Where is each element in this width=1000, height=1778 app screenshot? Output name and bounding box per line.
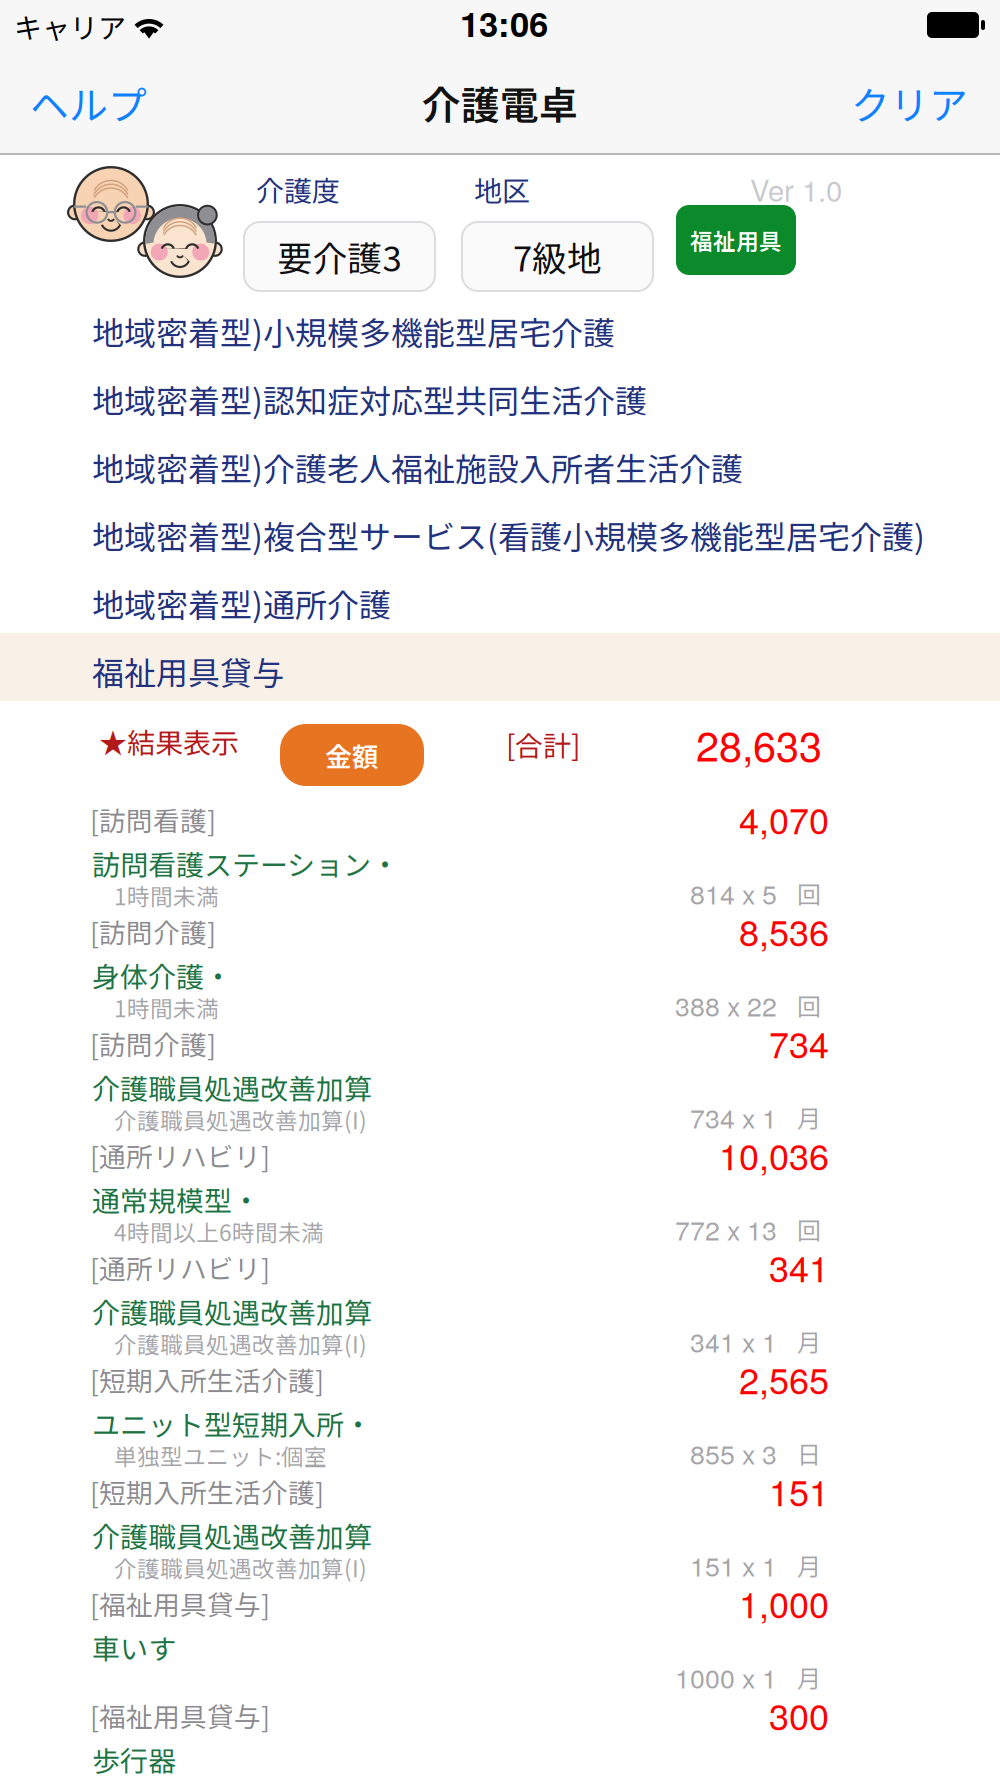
button[interactable]: 地域密着型)複合型サービス(看護小規模多機能型居宅介護) xyxy=(0,497,1000,565)
button[interactable]: クリア xyxy=(790,78,1000,128)
staticText: Ver 1.0 xyxy=(750,168,842,210)
staticText: 151 xyxy=(769,1465,829,1517)
button[interactable]: 地域密着型)小規模多機能型居宅介護 xyxy=(0,293,1000,361)
staticText: [訪問看護] xyxy=(90,800,216,839)
staticText: [短期入所生活介護] xyxy=(90,1472,324,1511)
staticText: 介護度 xyxy=(256,169,340,209)
staticText: [訪問介護] xyxy=(90,1024,216,1063)
staticText: 福祉用具 xyxy=(690,224,782,256)
staticText: 地域密着型)複合型サービス(看護小規模多機能型居宅介護) xyxy=(92,512,925,558)
staticText: [合計] xyxy=(506,724,580,764)
staticText: 介護電卓 xyxy=(422,75,578,131)
staticText: 814 x 5 xyxy=(690,874,777,912)
staticText: 月 xyxy=(797,1548,821,1582)
staticText: 金額 xyxy=(325,736,379,774)
staticText: 734 x 1 xyxy=(690,1098,777,1136)
button[interactable]: 要介護3 xyxy=(244,222,435,291)
staticText: [短期入所生活介護] xyxy=(90,1360,324,1399)
staticText: 1000 x 1 xyxy=(675,1658,777,1696)
staticText: 地域密着型)通所介護 xyxy=(92,580,391,626)
staticText: 月 xyxy=(797,1100,821,1134)
button[interactable]: 地域密着型)通所介護 xyxy=(0,565,1000,633)
staticText: ★結果表示 xyxy=(99,721,239,761)
staticText: 1時間未満 xyxy=(114,991,219,1024)
staticText: 300 xyxy=(769,1689,829,1741)
staticText: 341 xyxy=(769,1241,829,1293)
staticText: 1,000 xyxy=(739,1577,829,1629)
staticText: 2,565 xyxy=(739,1353,829,1405)
staticText: 歩行器 xyxy=(92,1739,176,1778)
staticText: ヘルプ xyxy=(30,75,147,131)
staticText: 1時間未満 xyxy=(114,879,219,912)
staticText: 訪問看護ステーション・ xyxy=(92,843,399,883)
staticText: 855 x 3 xyxy=(690,1434,777,1472)
staticText: 151 x 1 xyxy=(690,1546,777,1584)
staticText: [通所リハビリ] xyxy=(90,1248,270,1287)
button[interactable]: 介護電卓 xyxy=(350,74,650,132)
staticText: 7級地 xyxy=(513,231,602,282)
staticText: 13:06 xyxy=(460,0,548,48)
staticText: 341 x 1 xyxy=(690,1322,777,1360)
staticText: ユニット型短期入所・ xyxy=(92,1403,372,1443)
staticText: 月 xyxy=(797,1660,821,1694)
staticText: 地域密着型)認知症対応型共同生活介護 xyxy=(92,376,647,422)
staticText: [訪問介護] xyxy=(90,912,216,951)
staticText: 介護職員処遇改善加算(I) xyxy=(114,1327,367,1360)
staticText: 通常規模型・ xyxy=(92,1179,260,1219)
staticText: [福祉用具貸与] xyxy=(90,1584,270,1623)
staticText: 要介護3 xyxy=(277,231,401,282)
staticText: 回 xyxy=(797,876,821,910)
button[interactable]: 7級地 xyxy=(462,222,653,291)
staticText: 福祉用具貸与 xyxy=(92,648,284,694)
staticText: 介護職員処遇改善加算 xyxy=(92,1291,372,1331)
staticText: 28,633 xyxy=(696,714,822,773)
staticText: 10,036 xyxy=(719,1129,829,1181)
staticText: 地域密着型)小規模多機能型居宅介護 xyxy=(92,308,615,354)
staticText: 734 xyxy=(769,1017,829,1069)
staticText: 地域密着型)介護老人福祉施設入所者生活介護 xyxy=(92,444,743,490)
staticText: 回 xyxy=(797,1212,821,1246)
button[interactable]: 地域密着型)認知症対応型共同生活介護 xyxy=(0,361,1000,429)
staticText: 介護職員処遇改善加算 xyxy=(92,1067,372,1107)
button[interactable]: 福祉用具 xyxy=(676,205,796,275)
button[interactable]: 金額 xyxy=(280,724,424,786)
staticText: 388 x 22 xyxy=(675,986,777,1024)
staticText: 月 xyxy=(797,1324,821,1358)
staticText: 772 x 13 xyxy=(675,1210,777,1248)
staticText: 日 xyxy=(797,1436,821,1470)
staticText: 4,070 xyxy=(739,793,829,845)
staticText: [通所リハビリ] xyxy=(90,1136,270,1175)
staticText: 介護職員処遇改善加算(I) xyxy=(114,1551,367,1584)
button[interactable]: 地域密着型)介護老人福祉施設入所者生活介護 xyxy=(0,429,1000,497)
button[interactable]: 福祉用具貸与 xyxy=(0,633,1000,701)
staticText: 車いす xyxy=(92,1627,176,1667)
staticText: 介護職員処遇改善加算(I) xyxy=(114,1103,367,1136)
staticText: 介護職員処遇改善加算 xyxy=(92,1515,372,1555)
staticText: クリア xyxy=(851,75,968,131)
staticText: キャリア xyxy=(14,6,126,46)
button[interactable]: ヘルプ xyxy=(0,78,230,128)
staticText: 4時間以上6時間未満 xyxy=(114,1215,324,1248)
staticText: [福祉用具貸与] xyxy=(90,1696,270,1735)
staticText: 8,536 xyxy=(739,905,829,957)
staticText: 回 xyxy=(797,988,821,1022)
staticText: 身体介護・ xyxy=(92,955,232,995)
staticText: 単独型ユニット:個室 xyxy=(114,1439,327,1472)
staticText: 地区 xyxy=(474,169,530,209)
